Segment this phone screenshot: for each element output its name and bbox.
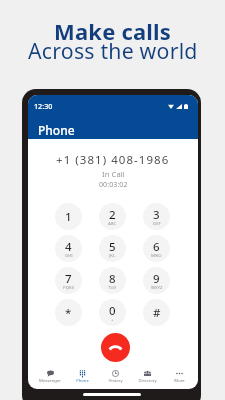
button[interactable]: 9: [143, 267, 170, 294]
button[interactable]: End call: [101, 333, 130, 362]
staticText: Messenger: [39, 378, 61, 384]
staticText: GHI: [65, 253, 73, 259]
button[interactable]: 1: [55, 203, 82, 230]
button[interactable]: 4: [55, 235, 82, 262]
button[interactable]: More: [163, 363, 195, 389]
staticText: 6: [153, 239, 160, 255]
staticText: +: [111, 317, 114, 323]
staticText: 00:03:02: [99, 180, 128, 190]
staticText: JKL: [109, 253, 116, 259]
staticText: 3: [153, 207, 160, 223]
staticText: 0: [109, 303, 116, 319]
staticText: 1: [65, 209, 72, 225]
button[interactable]: Messenger: [34, 363, 66, 389]
button[interactable]: 5: [99, 235, 126, 262]
staticText: Make calls: [54, 16, 172, 46]
staticText: DEF: [153, 221, 161, 227]
staticText: Phone: [76, 378, 89, 384]
staticText: 8: [109, 271, 116, 287]
staticText: History: [108, 378, 123, 384]
button[interactable]: 7: [55, 267, 82, 294]
staticText: More: [174, 378, 185, 384]
staticText: WXYZ: [151, 285, 163, 291]
staticText: MNO: [151, 253, 162, 259]
staticText: In Call: [102, 169, 125, 179]
staticText: PQRS: [63, 285, 75, 291]
button[interactable]: 2: [99, 203, 126, 230]
staticText: #: [153, 305, 161, 321]
staticText: 12:30: [34, 101, 53, 111]
staticText: 7: [65, 271, 72, 287]
staticText: 2: [109, 207, 116, 223]
button[interactable]: 0: [99, 299, 126, 326]
button[interactable]: 6: [143, 235, 170, 262]
button[interactable]: 8: [99, 267, 126, 294]
button[interactable]: #: [143, 299, 170, 326]
staticText: 4: [65, 239, 72, 255]
button[interactable]: Phone: [66, 363, 98, 389]
staticText: 5: [109, 239, 116, 255]
button[interactable]: Directory: [131, 363, 163, 389]
button[interactable]: 3: [143, 203, 170, 230]
staticText: ABC: [108, 221, 117, 227]
staticText: *: [65, 305, 72, 321]
staticText: 9: [153, 271, 160, 287]
button[interactable]: History: [99, 363, 131, 389]
staticText: TUV: [108, 285, 117, 291]
button[interactable]: *: [55, 299, 82, 326]
staticText: Across the world: [28, 36, 198, 65]
staticText: Directory: [138, 378, 157, 384]
staticText: +1 (381) 408-1986: [56, 152, 170, 168]
staticText: Phone: [38, 122, 75, 138]
